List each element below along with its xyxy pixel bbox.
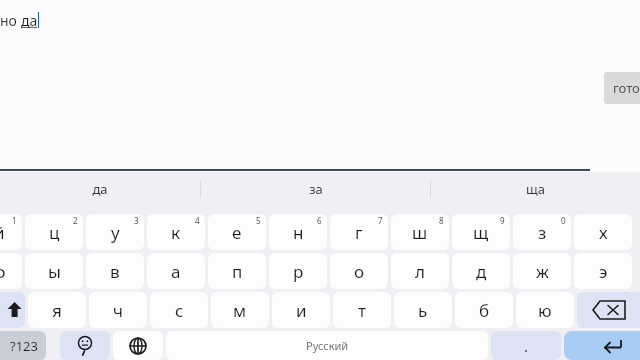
staticText: ю [538,299,552,322]
button[interactable]: д [452,253,510,289]
staticText: а [171,260,181,283]
button[interactable]: готово [604,72,640,104]
staticText: . [524,336,529,356]
staticText: ч [113,299,124,322]
button[interactable]: ю [516,292,574,328]
button[interactable]: у [86,214,144,250]
staticText: Русский [306,338,349,353]
staticText: но [0,11,21,30]
button[interactable]: н [269,214,327,250]
button[interactable]: г [330,214,388,250]
button[interactable]: к [147,214,205,250]
button[interactable]: з [513,214,571,250]
staticText: 9 [500,215,505,226]
staticText: за [309,180,323,198]
staticText: 7 [378,215,383,226]
staticText: да [21,11,38,30]
staticText: да [92,180,108,198]
staticText: 3 [134,215,139,226]
staticText: 5 [256,215,261,226]
button[interactable]: . [491,331,561,360]
button[interactable]: п [208,253,266,289]
button[interactable]: ща [431,172,640,206]
button[interactable]: х [574,214,632,250]
button[interactable]: е [208,214,266,250]
staticText: т [358,299,366,322]
staticText: х [599,221,608,244]
staticText: 6 [317,215,322,226]
button[interactable]: Emoji [60,331,110,360]
staticText: г [355,221,363,244]
staticText: п [232,260,243,283]
staticText: с [175,299,184,322]
staticText: э [599,260,608,283]
staticText: е [232,221,242,244]
staticText: ц [49,221,60,244]
staticText: з [538,221,547,244]
staticText: 4 [195,215,200,226]
button[interactable]: Shift [0,292,25,328]
button[interactable]: м [211,292,269,328]
staticText: ж [536,260,549,283]
staticText: ща [526,180,545,198]
button[interactable]: й [0,214,22,250]
button[interactable]: т [333,292,391,328]
staticText: 8 [439,215,444,226]
button[interactable]: за [201,172,430,206]
staticText: д [476,260,487,283]
staticText: и [296,299,307,322]
staticText: у [111,221,120,244]
button[interactable]: а [147,253,205,289]
staticText: й [0,221,5,244]
button[interactable]: ы [25,253,83,289]
button[interactable]: б [455,292,513,328]
button[interactable]: о [330,253,388,289]
button[interactable]: я [28,292,86,328]
staticText: о [354,260,365,283]
staticText: ы [48,260,61,283]
staticText: в [110,260,120,283]
staticText: 0 [561,215,566,226]
staticText: к [171,221,181,244]
button[interactable]: и [272,292,330,328]
staticText: ф [0,260,6,283]
button[interactable]: Enter [564,331,640,360]
staticText: р [293,260,304,283]
staticText: я [52,299,62,322]
staticText: 2 [73,215,78,226]
staticText: ь [418,299,428,322]
button[interactable]: щ [452,214,510,250]
staticText: ш [412,221,428,244]
button[interactable]: р [269,253,327,289]
button[interactable]: Change language [113,331,163,360]
button[interactable]: э [574,253,632,289]
staticText: б [479,299,490,322]
staticText: л [415,260,425,283]
button[interactable]: ?123 [0,331,46,360]
staticText: ?123 [10,337,38,355]
button[interactable]: ч [89,292,147,328]
button[interactable]: ь [394,292,452,328]
button[interactable]: ш [391,214,449,250]
staticText: м [233,299,247,322]
staticText: 1 [12,215,17,226]
button[interactable]: ж [513,253,571,289]
staticText: н [293,221,304,244]
button[interactable]: с [150,292,208,328]
button[interactable]: ф [0,253,22,289]
button[interactable]: л [391,253,449,289]
button[interactable]: Backspace [577,292,640,328]
button[interactable]: ц [25,214,83,250]
staticText: щ [473,221,489,244]
button[interactable]: в [86,253,144,289]
button[interactable]: да [0,172,200,206]
staticText: готово [613,79,640,97]
button[interactable]: Русский [166,331,488,360]
